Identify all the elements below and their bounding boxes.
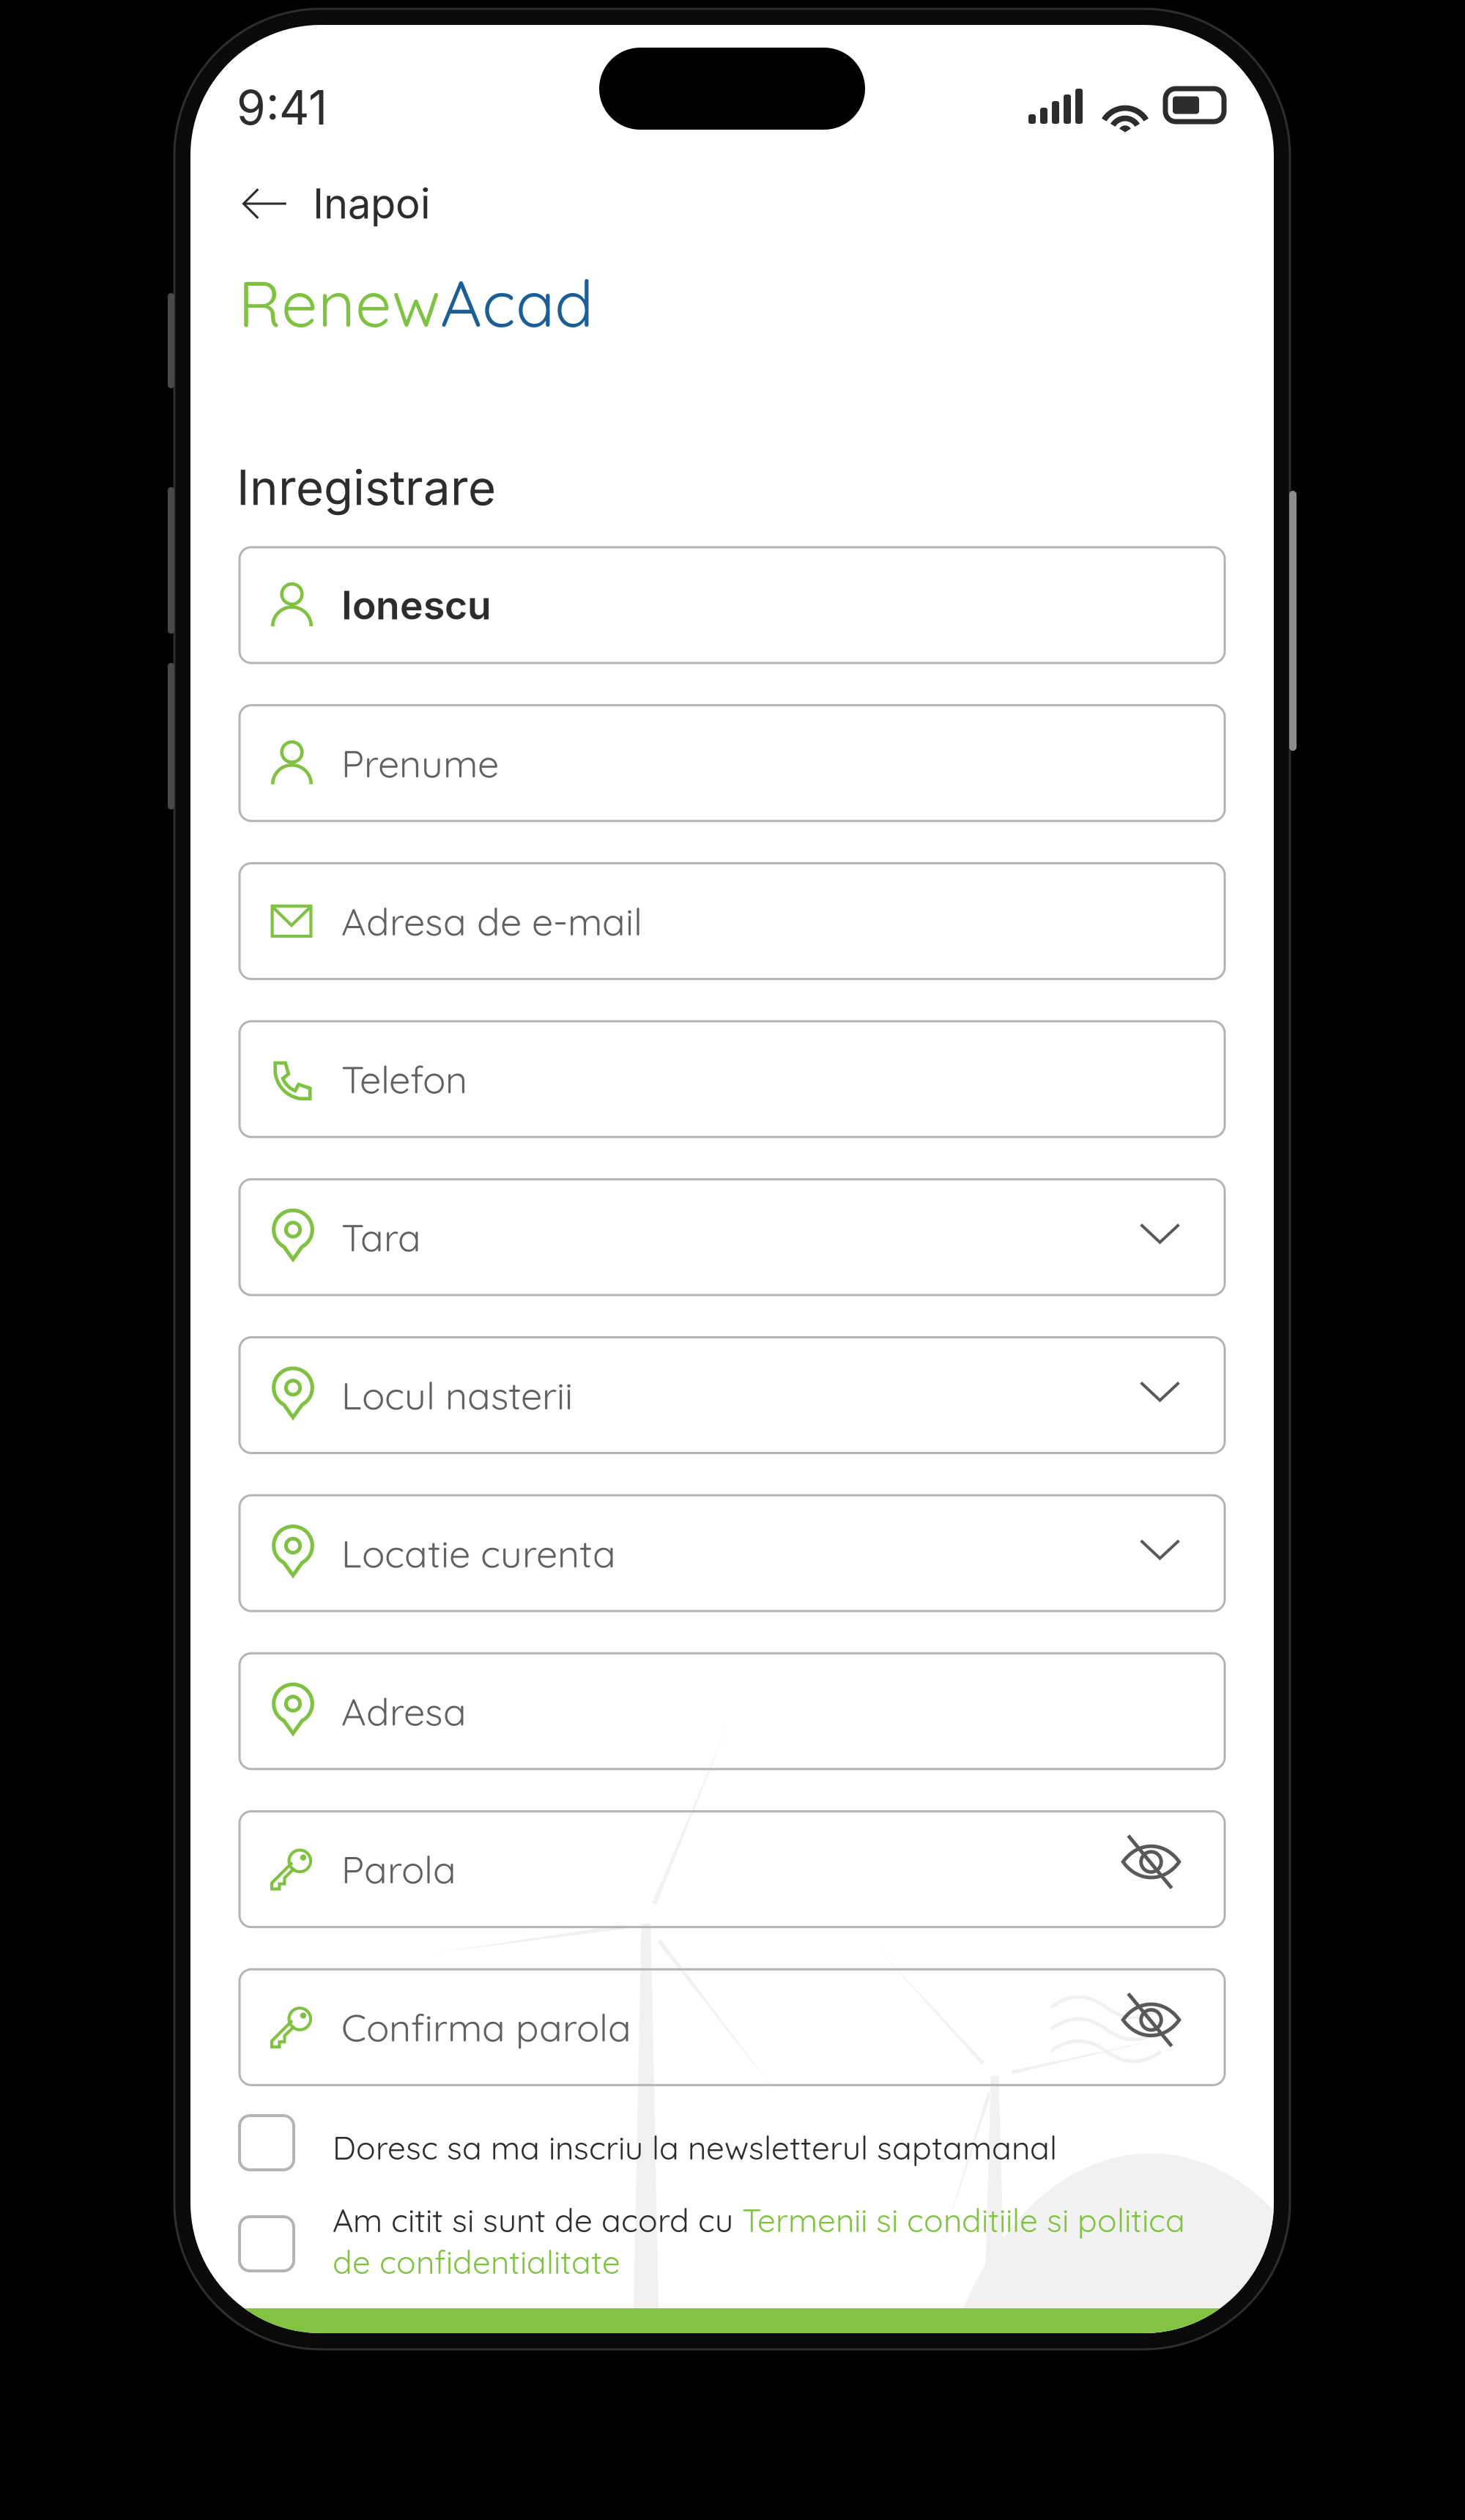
staticText: Inapoi	[313, 179, 431, 228]
button[interactable]: Ionescu	[240, 547, 1225, 663]
staticText: Termenii si conditiile si politica	[742, 2200, 1185, 2240]
staticText: Adresa de e-mail	[341, 897, 642, 945]
staticText: Locatie curenta	[341, 1529, 616, 1577]
staticText: 9:41	[237, 79, 327, 136]
button[interactable]: Locatie curenta	[240, 1495, 1225, 1611]
button[interactable]: Confirma parola	[240, 1969, 1225, 2085]
button[interactable]: Locul nasterii	[240, 1337, 1225, 1453]
button[interactable]: Telefon	[240, 1021, 1225, 1137]
button[interactable]: Am citit si sunt de acord cu	[240, 2200, 1225, 2317]
staticText: Parola	[341, 1845, 456, 1893]
staticText: Am citit si sunt de acord cu	[333, 2200, 742, 2240]
staticText: Renew	[238, 262, 440, 343]
button[interactable]: Parola	[240, 1811, 1225, 1927]
staticText: Adresa	[341, 1687, 467, 1735]
staticText: Telefon	[341, 1055, 467, 1103]
staticText: Tara	[341, 1213, 421, 1261]
staticText: Inregistrare	[237, 459, 496, 516]
staticText: Ionescu	[341, 581, 492, 629]
staticText: Acad	[440, 262, 593, 343]
button[interactable]: Inapoi	[242, 168, 549, 239]
button[interactable]: Tara	[240, 1179, 1225, 1295]
staticText: Prenume	[341, 739, 499, 787]
button[interactable]: Doresc sa ma inscriu la newsletterul sap…	[240, 2114, 1225, 2179]
button[interactable]: Prenume	[240, 705, 1225, 821]
button[interactable]: Adresa de e-mail	[240, 863, 1225, 979]
staticText: Confirma parola	[341, 2003, 631, 2051]
staticText: Doresc sa ma inscriu la newsletterul sap…	[333, 2127, 1057, 2168]
staticText: de confidentialitate	[333, 2242, 620, 2282]
button[interactable]: Adresa	[240, 1653, 1225, 1769]
staticText: Locul nasterii	[341, 1371, 573, 1419]
